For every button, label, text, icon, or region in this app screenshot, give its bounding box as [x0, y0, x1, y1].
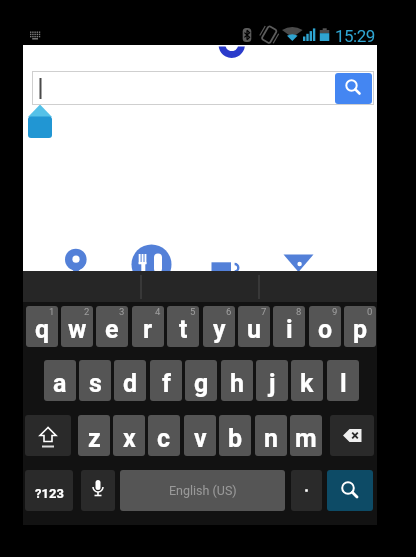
staticText: u	[247, 315, 262, 344]
staticText: f	[162, 369, 171, 398]
button[interactable]	[330, 415, 374, 456]
staticText: s	[89, 369, 102, 398]
button[interactable]: r	[132, 306, 164, 347]
staticText: q	[35, 315, 50, 344]
button[interactable]: w	[61, 306, 93, 347]
button[interactable]: u	[238, 306, 270, 347]
staticText: h	[230, 369, 245, 398]
staticText: t	[179, 315, 188, 344]
button[interactable]	[25, 415, 71, 456]
button[interactable]	[120, 470, 285, 511]
button[interactable]: i	[273, 306, 305, 347]
button[interactable]: o	[309, 306, 341, 347]
button[interactable]: l	[327, 360, 359, 401]
staticText: k	[300, 369, 314, 398]
staticText: 15:29	[335, 26, 375, 46]
staticText: English (US)	[169, 483, 237, 498]
staticText: g	[194, 369, 209, 398]
button[interactable]: y	[203, 306, 235, 347]
button[interactable]: f	[150, 360, 182, 401]
button[interactable]: q	[26, 306, 58, 347]
staticText: a	[53, 369, 67, 398]
button[interactable]: a	[44, 360, 76, 401]
staticText: 9	[332, 306, 338, 317]
staticText: 3	[119, 306, 125, 317]
button[interactable]: n	[255, 415, 287, 456]
staticText: x	[123, 424, 136, 453]
staticText: 5	[190, 306, 196, 317]
staticText: 6	[226, 306, 232, 317]
button[interactable]	[291, 470, 322, 511]
staticText: 8	[296, 306, 302, 317]
staticText: j	[269, 369, 276, 398]
button[interactable]: t	[167, 306, 199, 347]
staticText: n	[264, 424, 279, 453]
button[interactable]: z	[78, 415, 110, 456]
button[interactable]: x	[113, 415, 145, 456]
staticText: 7	[261, 306, 267, 317]
button[interactable]: m	[290, 415, 322, 456]
staticText: 0	[367, 306, 373, 317]
staticText: o	[318, 315, 333, 344]
button[interactable]: s	[79, 360, 111, 401]
staticText: 2	[84, 306, 90, 317]
button[interactable]: b	[219, 415, 251, 456]
button[interactable]: k	[291, 360, 323, 401]
staticText: l	[340, 369, 347, 398]
button[interactable]	[335, 73, 372, 104]
staticText: 4	[155, 306, 161, 317]
staticText: y	[213, 315, 226, 344]
button[interactable]: d	[114, 360, 146, 401]
button[interactable]: e	[96, 306, 128, 347]
staticText: z	[88, 424, 101, 453]
staticText: i	[286, 315, 293, 344]
button[interactable]	[327, 470, 373, 511]
staticText: ?123	[35, 486, 64, 501]
staticText: c	[157, 424, 171, 453]
button[interactable]: c	[148, 415, 180, 456]
button[interactable]: g	[185, 360, 217, 401]
button[interactable]: p	[344, 306, 376, 347]
staticText: m	[295, 424, 317, 453]
button[interactable]: h	[221, 360, 253, 401]
button[interactable]: v	[184, 415, 216, 456]
staticText: p	[353, 315, 368, 344]
button[interactable]: ?123	[25, 470, 73, 511]
staticText: d	[123, 369, 138, 398]
staticText: e	[105, 315, 119, 344]
staticText: r	[143, 315, 153, 344]
button[interactable]	[81, 470, 115, 511]
staticText: b	[228, 424, 243, 453]
staticText: 1	[49, 306, 55, 317]
staticText: v	[194, 424, 207, 453]
button[interactable]	[32, 71, 374, 105]
staticText: w	[68, 315, 87, 344]
button[interactable]: j	[256, 360, 288, 401]
